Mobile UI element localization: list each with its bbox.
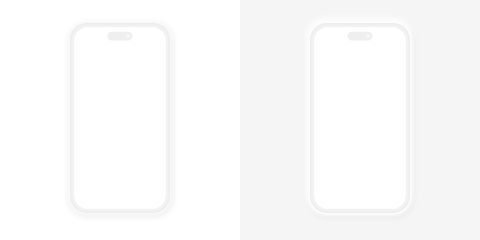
button[interactable]: Phone mockup on white background: [0, 0, 240, 240]
button[interactable]: Phone mockup on grey background: [240, 0, 480, 240]
